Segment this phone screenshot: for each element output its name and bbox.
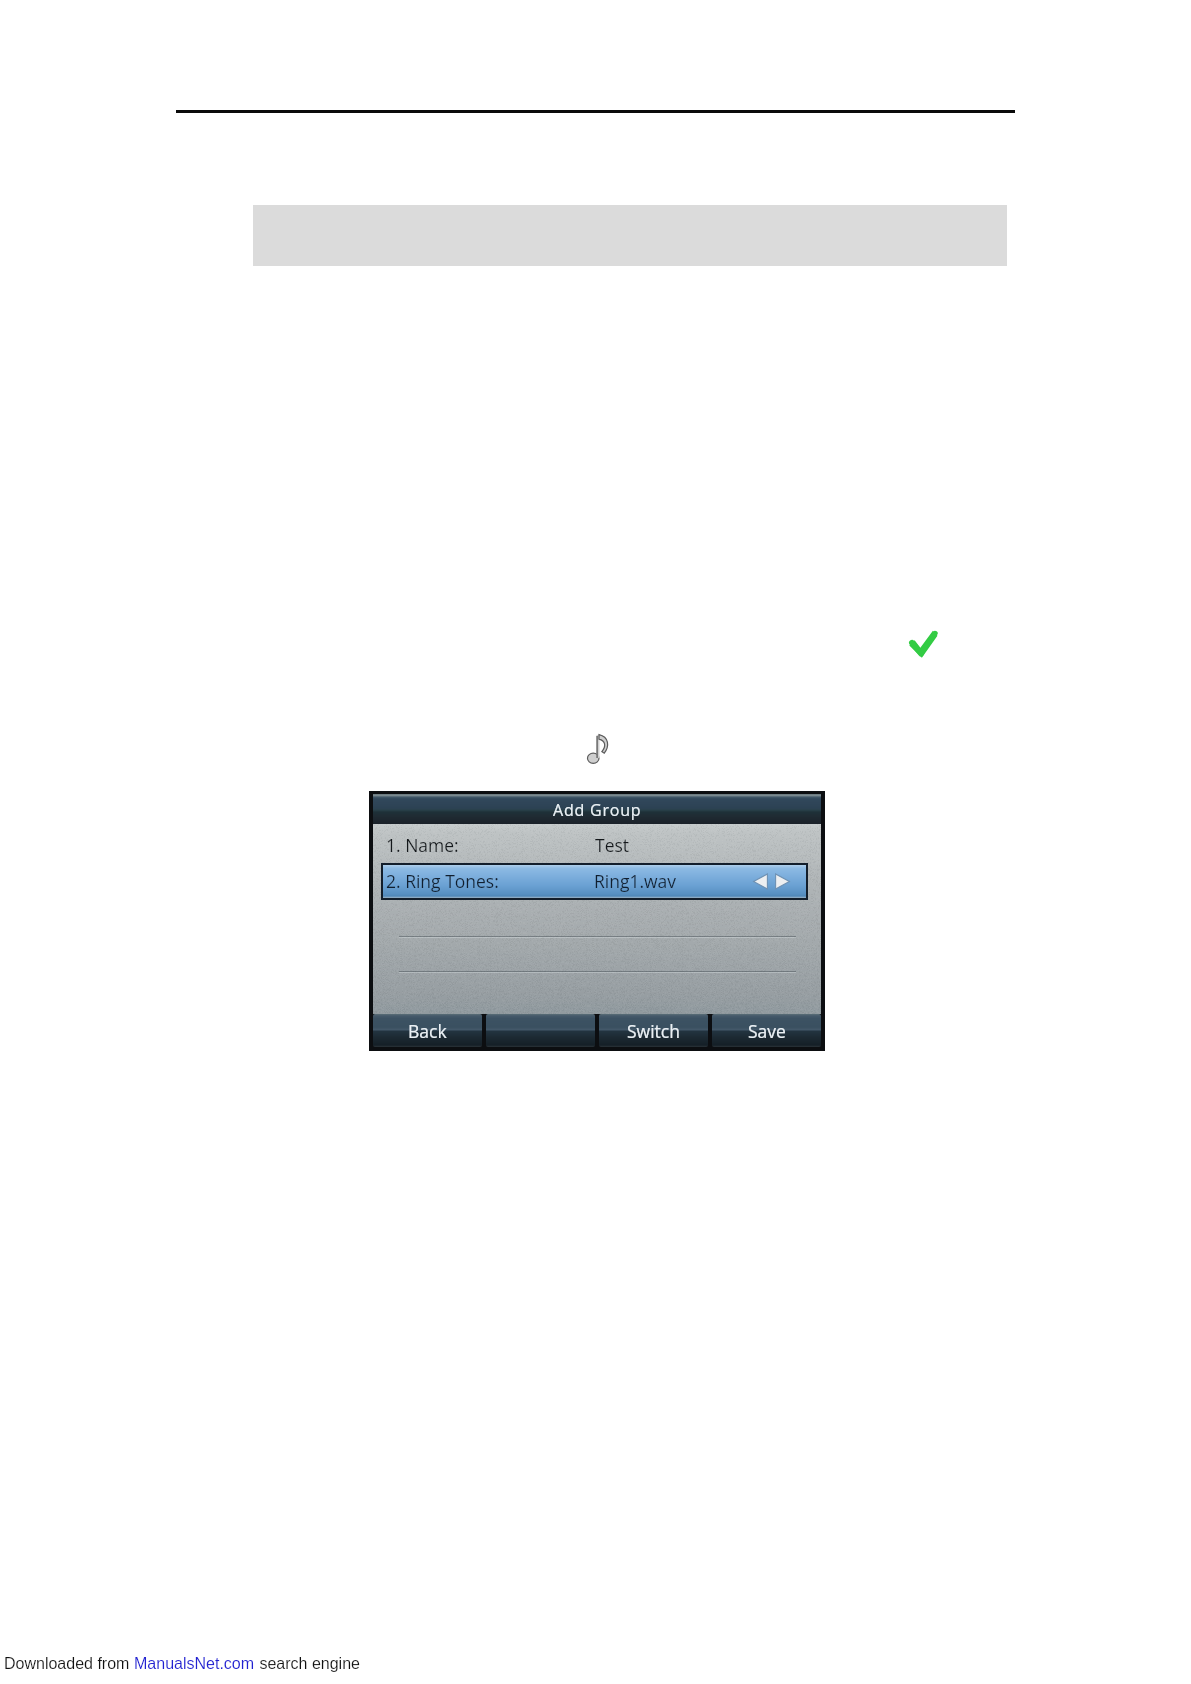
- staticText: Ring1.wav: [594, 869, 677, 893]
- button[interactable]: Previous: [753, 873, 768, 890]
- staticText: 2. Ring Tones:: [386, 869, 499, 893]
- button[interactable]: 1. Name:: [373, 824, 821, 858]
- button[interactable]: Add Group: [373, 794, 821, 824]
- staticText: 1. Name:: [386, 833, 459, 857]
- staticText: Downloaded from: [4, 1655, 134, 1673]
- staticText: Add Group: [553, 799, 642, 821]
- other: Ring tone: [587, 733, 611, 765]
- button[interactable]: Save: [712, 1014, 821, 1047]
- button[interactable]: Next: [775, 873, 790, 890]
- button[interactable]: [486, 1014, 595, 1047]
- staticText: Save: [748, 1019, 786, 1043]
- button[interactable]: Back: [373, 1014, 482, 1047]
- button[interactable]: Switch: [599, 1014, 708, 1047]
- staticText: Back: [408, 1019, 447, 1043]
- button[interactable]: 2. Ring Tones:: [383, 865, 806, 898]
- staticText: search engine: [255, 1655, 360, 1673]
- button[interactable]: ManualsNet.com: [134, 1655, 255, 1673]
- staticText: Switch: [627, 1019, 680, 1043]
- other: Check mark: [904, 625, 942, 663]
- staticText: Test: [595, 833, 630, 857]
